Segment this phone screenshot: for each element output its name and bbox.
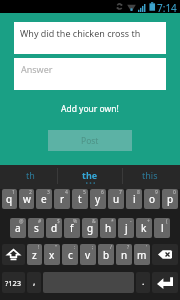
button[interactable]: v bbox=[80, 244, 96, 265]
staticText: d bbox=[51, 221, 58, 235]
staticText: th bbox=[26, 169, 35, 181]
button[interactable]: y bbox=[90, 189, 106, 209]
staticText: Add your own! bbox=[61, 103, 119, 115]
button[interactable]: o bbox=[144, 189, 160, 209]
button[interactable]: h bbox=[100, 218, 116, 238]
button[interactable]: i bbox=[126, 189, 142, 209]
staticText: ! bbox=[38, 244, 40, 251]
staticText: : bbox=[74, 244, 76, 251]
staticText: o bbox=[149, 192, 156, 206]
button[interactable]: Post bbox=[48, 130, 132, 151]
staticText: a bbox=[15, 221, 21, 235]
staticText: ?123 bbox=[5, 278, 22, 288]
staticText: g bbox=[87, 221, 94, 235]
button[interactable]: c bbox=[62, 244, 78, 265]
staticText: j bbox=[125, 221, 128, 235]
button[interactable]: l bbox=[154, 218, 170, 238]
button[interactable]: s bbox=[28, 218, 44, 238]
button[interactable]: m bbox=[134, 244, 150, 265]
staticText: * bbox=[111, 218, 114, 225]
staticText: w bbox=[23, 192, 31, 206]
staticText: 8 bbox=[137, 189, 140, 196]
staticText: 7 bbox=[119, 189, 122, 196]
staticText: ? bbox=[127, 244, 130, 251]
staticText: 9 bbox=[155, 189, 158, 196]
staticText: v bbox=[85, 248, 91, 262]
staticText: l bbox=[161, 221, 164, 235]
staticText: , bbox=[33, 275, 36, 287]
staticText: Answer bbox=[21, 63, 53, 75]
button[interactable]: n bbox=[116, 244, 132, 265]
staticText: the bbox=[82, 169, 98, 181]
staticText: + bbox=[147, 218, 150, 225]
staticText: 5 bbox=[83, 189, 86, 196]
staticText: h bbox=[105, 221, 112, 235]
staticText: ; bbox=[92, 244, 94, 251]
staticText: / bbox=[110, 244, 112, 251]
staticText: % bbox=[73, 218, 78, 225]
button[interactable]: Shift bbox=[2, 244, 25, 265]
button[interactable]: b bbox=[98, 244, 114, 265]
staticText: s bbox=[34, 221, 39, 235]
button[interactable]: k bbox=[136, 218, 152, 238]
staticText: $ bbox=[57, 218, 60, 225]
button[interactable]: f bbox=[64, 218, 80, 238]
staticText: f bbox=[70, 221, 74, 235]
staticText: y bbox=[95, 192, 101, 206]
staticText: n bbox=[121, 248, 128, 262]
button[interactable]: d bbox=[46, 218, 62, 238]
button[interactable]: , bbox=[27, 272, 41, 293]
button[interactable]: j bbox=[118, 218, 134, 238]
staticText: b bbox=[103, 248, 110, 262]
staticText: 2 bbox=[29, 189, 32, 196]
button[interactable]: Answer bbox=[14, 58, 166, 90]
button[interactable]: u bbox=[108, 189, 124, 209]
button[interactable]: Why did the chicken cross th bbox=[14, 22, 166, 54]
staticText: z bbox=[32, 248, 37, 262]
button[interactable]: th bbox=[0, 165, 60, 189]
button[interactable]: t bbox=[72, 189, 88, 209]
staticText: & bbox=[92, 218, 96, 225]
staticText: u bbox=[113, 192, 120, 206]
staticText: 6 bbox=[101, 189, 104, 196]
button[interactable]: r bbox=[54, 189, 70, 209]
button[interactable]: q bbox=[2, 189, 17, 209]
staticText: ' bbox=[146, 244, 148, 251]
staticText: r bbox=[60, 192, 65, 206]
staticText: 1 bbox=[12, 189, 15, 196]
staticText: Post bbox=[81, 135, 99, 147]
staticText: x bbox=[49, 248, 55, 262]
button[interactable]: the bbox=[60, 165, 120, 189]
button[interactable]: z bbox=[27, 244, 42, 265]
staticText: e bbox=[41, 192, 47, 206]
button[interactable]: a bbox=[10, 218, 26, 238]
staticText: m bbox=[137, 248, 147, 262]
staticText: @ bbox=[19, 218, 24, 225]
staticText: - bbox=[130, 218, 132, 225]
button[interactable]: ?123 bbox=[2, 272, 25, 293]
staticText: i bbox=[133, 192, 136, 206]
button[interactable]: . bbox=[136, 272, 150, 293]
button[interactable]: e bbox=[36, 189, 52, 209]
staticText: 7:14 bbox=[157, 1, 177, 14]
button[interactable]: p bbox=[162, 189, 178, 209]
button[interactable]: Delete bbox=[152, 244, 178, 265]
button[interactable]: w bbox=[19, 189, 34, 209]
staticText: Why did the chicken cross th bbox=[20, 27, 141, 39]
staticText: # bbox=[38, 218, 42, 225]
staticText: ( bbox=[166, 218, 168, 225]
staticText: 4 bbox=[65, 189, 68, 196]
staticText: " bbox=[55, 244, 58, 251]
staticText: 0 bbox=[173, 189, 176, 196]
button[interactable]: this bbox=[120, 165, 180, 189]
staticText: p bbox=[167, 192, 174, 206]
staticText: . bbox=[142, 275, 145, 287]
button[interactable]: x bbox=[44, 244, 60, 265]
button[interactable]: Enter bbox=[152, 272, 178, 293]
staticText: t bbox=[78, 192, 82, 206]
staticText: c bbox=[68, 248, 73, 262]
staticText: k bbox=[141, 221, 147, 235]
button[interactable]: g bbox=[82, 218, 98, 238]
staticText: q bbox=[6, 192, 13, 206]
